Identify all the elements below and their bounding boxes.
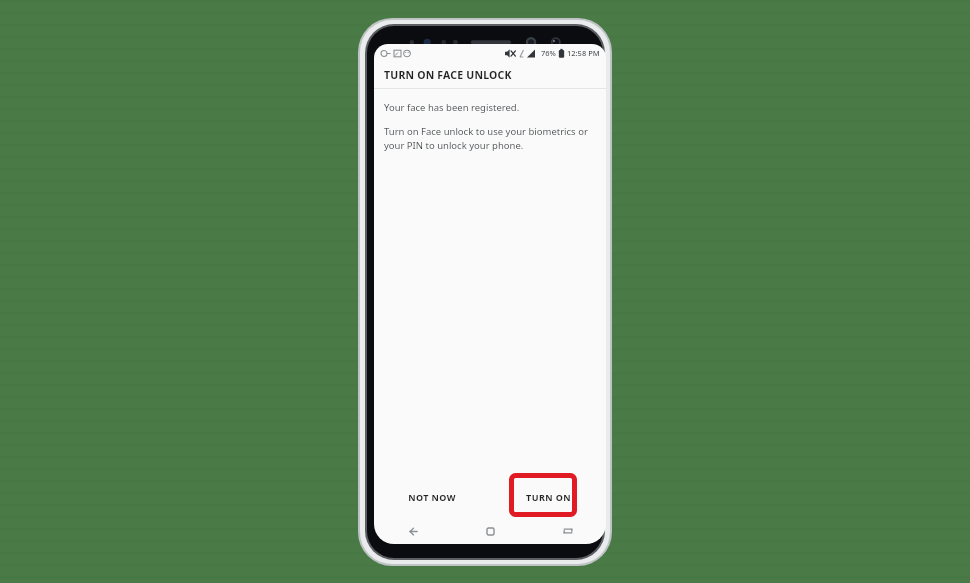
button[interactable]: NOT NOW bbox=[374, 476, 490, 518]
staticText: 76% bbox=[541, 48, 556, 58]
button[interactable]: Back bbox=[374, 518, 452, 544]
staticText: TURN ON bbox=[526, 491, 571, 503]
staticText: TURN ON FACE UNLOCK bbox=[384, 68, 512, 82]
button[interactable]: Home bbox=[452, 518, 529, 544]
button[interactable]: Recent apps bbox=[529, 518, 606, 544]
staticText: Turn on Face unlock to use your biometri… bbox=[384, 125, 592, 152]
button[interactable]: TURN ON bbox=[490, 476, 606, 518]
staticText: NOT NOW bbox=[408, 491, 456, 503]
staticText: 12:58 PM bbox=[567, 48, 600, 58]
staticText: Your face has been registered. bbox=[384, 101, 520, 114]
